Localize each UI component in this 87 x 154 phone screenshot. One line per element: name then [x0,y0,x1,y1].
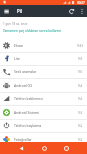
button[interactable]: More options [76,6,87,17]
staticText: %4 [78,97,83,101]
button[interactable]: Fotoğraflar [0,133,87,146]
staticText: %9 [78,57,83,61]
staticText: %2 [78,138,83,142]
button[interactable]: Lite [0,52,87,65]
staticText: 1 gün 18 sa. önce [3,22,28,26]
staticText: %5 [78,70,83,74]
staticText: Ekran [14,43,24,48]
staticText: Lite [14,56,20,61]
button[interactable]: Open navigation menu [0,6,11,17]
staticText: Tamamen şarj olduktan sonra kullanım [3,29,62,33]
button[interactable]: Back [15,142,27,154]
staticText: %33 [77,44,83,48]
button[interactable]: Sesli aramalar [0,65,87,78]
staticText: 00:37 [77,1,85,5]
staticText: %4 [78,84,83,88]
button[interactable]: Recent apps [60,142,72,154]
staticText: Telefon başlatma [14,123,42,128]
staticText: Pil [17,8,23,14]
staticText: Android OS [14,83,33,88]
button[interactable]: Android OS [0,79,87,92]
staticText: Fotoğraflar [14,137,32,142]
staticText: %2 [78,124,83,128]
staticText: Telefon beklemesi [14,96,43,101]
button[interactable]: Telefon beklemesi [0,92,87,105]
staticText: Android Sistemi [14,110,40,115]
button[interactable]: Refresh [66,6,77,17]
button[interactable]: Home [38,142,50,154]
button[interactable]: Android Sistemi [0,106,87,119]
button[interactable]: Ekran [0,39,87,52]
staticText: Sesli aramalar [14,69,37,74]
staticText: %3 [78,111,83,115]
button[interactable]: Telefon başlatma [0,119,87,132]
